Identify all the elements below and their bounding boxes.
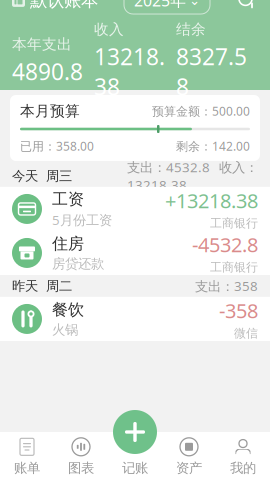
staticText: +13218.38 xyxy=(165,187,258,214)
staticText: 结余 xyxy=(176,20,206,38)
staticText: 住房 xyxy=(52,234,84,254)
button[interactable]: 资产 xyxy=(162,432,216,480)
staticText: 火锅 xyxy=(52,322,78,338)
button[interactable]: 记账 xyxy=(113,410,157,454)
button[interactable]: 默认账本 xyxy=(12,0,98,11)
staticText: 账单 xyxy=(14,460,40,476)
button[interactable]: 我的 xyxy=(216,432,270,480)
staticText: 预算金额：500.00 xyxy=(152,103,250,119)
staticText: 已用：358.00 xyxy=(20,138,94,154)
staticText: 8327.58 xyxy=(176,41,247,102)
button[interactable]: 餐饮 xyxy=(0,297,270,341)
staticText: 今天 周三 xyxy=(12,168,72,184)
button[interactable]: 工资 xyxy=(0,187,270,231)
staticText: 5月份工资 xyxy=(52,211,112,229)
staticText: 工商银行 xyxy=(210,216,258,231)
staticText: 2025年 xyxy=(134,0,186,11)
staticText: 支出：358 xyxy=(195,277,258,295)
button[interactable]: 账单 xyxy=(0,432,54,480)
staticText: -358 xyxy=(219,297,258,324)
staticText: 资产 xyxy=(176,460,202,476)
button[interactable]: 搜索 xyxy=(236,0,258,11)
staticText: 13218.38 xyxy=(94,41,165,102)
staticText: 剩余：142.00 xyxy=(176,138,250,154)
staticText: 本年支出 xyxy=(12,35,72,53)
staticText: 图表 xyxy=(68,460,94,476)
staticText: 工资 xyxy=(52,189,84,209)
staticText: 记账 xyxy=(122,460,148,476)
staticText: 支出：4532.8 收入：13218.38 xyxy=(127,158,258,194)
button[interactable]: 本月预算 xyxy=(10,95,260,161)
staticText: 收入 xyxy=(94,20,124,38)
staticText: ⌄ xyxy=(189,0,200,8)
button[interactable]: 记账 xyxy=(108,432,162,480)
staticText: 工商银行 xyxy=(210,260,258,275)
button[interactable]: 图表 xyxy=(54,432,108,480)
staticText: 微信 xyxy=(234,326,258,341)
button[interactable]: 2025年 xyxy=(124,0,210,14)
staticText: 默认账本 xyxy=(30,0,98,11)
staticText: 房贷还款 xyxy=(52,256,104,272)
staticText: 4890.8 xyxy=(12,56,83,87)
button[interactable]: 住房 xyxy=(0,231,270,275)
staticText: 我的 xyxy=(230,460,256,476)
staticText: 餐饮 xyxy=(52,300,84,320)
staticText: -4532.8 xyxy=(192,231,258,258)
staticText: 本月预算 xyxy=(20,102,80,120)
staticText: 昨天 周二 xyxy=(12,278,72,294)
